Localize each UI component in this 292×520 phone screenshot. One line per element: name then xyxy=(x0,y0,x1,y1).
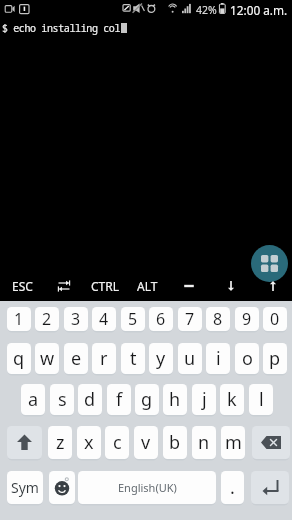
button[interactable]: 1 xyxy=(7,307,31,331)
staticText: 8 xyxy=(213,308,223,330)
button[interactable]: h xyxy=(163,384,187,415)
staticText: s xyxy=(58,387,67,412)
button[interactable]: Shift xyxy=(7,426,42,459)
button[interactable]: m xyxy=(221,426,245,459)
button[interactable]: English(UK) xyxy=(78,471,216,504)
staticText: c xyxy=(113,430,122,455)
staticText: k xyxy=(227,387,237,412)
staticText: 2 xyxy=(42,308,52,330)
button[interactable]: 4 xyxy=(92,307,116,331)
button[interactable]: b xyxy=(163,426,187,459)
staticText: y xyxy=(156,346,166,371)
button[interactable]: s xyxy=(50,384,74,415)
button[interactable]: r xyxy=(92,343,116,374)
staticText: a xyxy=(28,387,39,412)
button[interactable]: l xyxy=(249,384,273,415)
staticText: t xyxy=(130,346,137,371)
staticText: j xyxy=(202,387,207,412)
staticText: English(UK) xyxy=(118,480,177,495)
button[interactable]: y xyxy=(149,343,173,374)
button[interactable]: $ echo installing col xyxy=(0,0,292,301)
staticText: m xyxy=(225,430,242,455)
staticText: $ echo installing col xyxy=(2,21,121,35)
button[interactable]: g xyxy=(135,384,159,415)
button[interactable]: 2 xyxy=(35,307,59,331)
staticText: CTRL xyxy=(91,278,120,294)
button[interactable]: ALT xyxy=(126,269,168,302)
button[interactable]: 9 xyxy=(235,307,259,331)
button[interactable]: 8 xyxy=(206,307,230,331)
staticText: x xyxy=(84,430,94,455)
button[interactable]: p xyxy=(263,343,287,374)
staticText: h xyxy=(169,387,181,412)
staticText: 5 xyxy=(128,308,138,330)
button[interactable]: n xyxy=(192,426,216,459)
button[interactable]: ESC xyxy=(2,269,43,302)
staticText: z xyxy=(56,430,65,455)
button[interactable]: t xyxy=(121,343,145,374)
button[interactable]: f xyxy=(107,384,131,415)
staticText: Sym xyxy=(11,478,39,497)
staticText: r xyxy=(100,346,108,371)
button[interactable]: x xyxy=(77,426,101,459)
button[interactable]: z xyxy=(48,426,72,459)
staticText: q xyxy=(13,346,25,371)
staticText: e xyxy=(71,346,82,371)
button[interactable]: v xyxy=(134,426,158,459)
button[interactable]: d xyxy=(78,384,102,415)
staticText: ALT xyxy=(137,278,158,294)
button[interactable]: j xyxy=(192,384,216,415)
button[interactable]: Arrow up xyxy=(252,269,292,302)
staticText: 1 xyxy=(14,308,24,330)
button[interactable]: Arrow down xyxy=(210,269,252,302)
button[interactable]: c xyxy=(105,426,129,459)
button[interactable]: w xyxy=(35,343,59,374)
button[interactable]: k xyxy=(220,384,244,415)
staticText: . xyxy=(230,475,235,500)
staticText: 4 xyxy=(99,308,109,330)
button[interactable]: Emoji xyxy=(49,471,75,504)
staticText: g xyxy=(141,387,153,412)
button[interactable]: e xyxy=(64,343,88,374)
staticText: d xyxy=(84,387,96,412)
staticText: 42% xyxy=(196,3,217,17)
staticText: p xyxy=(269,346,281,371)
staticText: o xyxy=(242,346,253,371)
staticText: w xyxy=(40,346,55,371)
button[interactable]: Sym xyxy=(7,471,43,504)
button[interactable]: Tab xyxy=(43,269,84,302)
button[interactable]: Backspace xyxy=(252,426,290,459)
button[interactable]: Enter xyxy=(251,471,289,504)
button[interactable]: a xyxy=(21,384,45,415)
staticText: f xyxy=(116,387,123,412)
staticText: n xyxy=(198,430,210,455)
staticText: 9 xyxy=(242,308,252,330)
button[interactable]: u xyxy=(178,343,202,374)
button[interactable]: . xyxy=(221,471,244,504)
button[interactable]: Show extra keys xyxy=(251,245,288,282)
button[interactable]: 3 xyxy=(64,307,88,331)
staticText: 3 xyxy=(71,308,81,330)
staticText: 6 xyxy=(156,308,166,330)
button[interactable]: CTRL xyxy=(84,269,126,302)
button[interactable]: Minus xyxy=(168,269,210,302)
staticText: ESC xyxy=(12,278,33,294)
staticText: l xyxy=(259,387,264,412)
button[interactable]: 5 xyxy=(121,307,145,331)
staticText: 12:00 a.m. xyxy=(230,2,288,18)
staticText: b xyxy=(169,430,181,455)
button[interactable]: 0 xyxy=(263,307,287,331)
staticText: 0 xyxy=(270,308,280,330)
button[interactable]: 7 xyxy=(178,307,202,331)
staticText: v xyxy=(141,430,151,455)
staticText: u xyxy=(184,346,196,371)
button[interactable]: o xyxy=(235,343,259,374)
staticText: i xyxy=(216,346,221,371)
button[interactable]: i xyxy=(206,343,230,374)
staticText: 7 xyxy=(185,308,195,330)
button[interactable]: 6 xyxy=(149,307,173,331)
button[interactable]: q xyxy=(7,343,31,374)
